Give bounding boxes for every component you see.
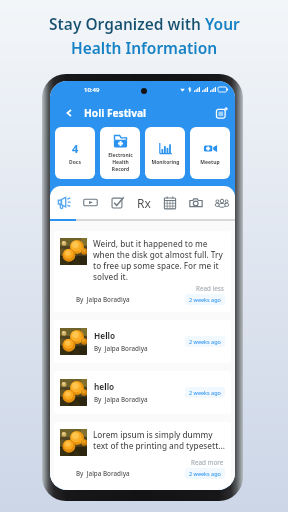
button[interactable]: Meetup — [190, 127, 230, 179]
staticText: Lorem ipsum is simply dummy text of the … — [93, 429, 225, 451]
staticText: Your — [205, 13, 240, 34]
button[interactable]: hello — [54, 371, 231, 414]
staticText: Meetup — [200, 159, 220, 166]
button[interactable]: 2 weeks ago — [185, 468, 225, 479]
button[interactable]: Add note — [214, 105, 230, 121]
button[interactable]: Electronic Health Record — [100, 127, 140, 179]
other: Back — [65, 109, 73, 117]
button[interactable]: Weird, but it happened to me when the di… — [54, 231, 231, 312]
staticText: 4 — [72, 141, 79, 156]
staticText: By Jalpa Boradiya — [94, 395, 148, 404]
staticText: Rx — [137, 195, 151, 211]
staticText: By Jalpa Boradiya — [94, 344, 148, 353]
button[interactable]: Read more — [191, 456, 225, 467]
button[interactable]: Prescriptions — [131, 186, 157, 219]
button[interactable]: Members — [209, 186, 235, 219]
staticText: Stay Organized with — [49, 13, 205, 34]
staticText: Holi Festival — [84, 106, 147, 120]
staticText: Docs — [69, 159, 81, 166]
staticText: 2 weeks ago — [189, 470, 221, 477]
staticText: Monitoring — [151, 159, 180, 166]
button[interactable]: Calendar — [157, 186, 183, 219]
button[interactable]: Announcements — [50, 186, 77, 219]
button[interactable]: Photos — [183, 186, 209, 219]
staticText: Weird, but it happened to me when the di… — [93, 238, 225, 282]
staticText: hello — [94, 381, 115, 392]
button[interactable]: 2 weeks ago — [185, 336, 225, 347]
staticText: Electronic Health Record — [108, 152, 133, 173]
staticText: By Jalpa Boradiya — [76, 469, 130, 478]
button[interactable]: Hello — [54, 320, 231, 363]
staticText: By Jalpa Boradiya — [76, 295, 130, 304]
staticText: 2 weeks ago — [189, 338, 221, 345]
button[interactable]: Tasks — [104, 186, 131, 219]
staticText: Hello — [94, 330, 116, 341]
button[interactable]: Monitoring — [145, 127, 185, 179]
staticText: 2 weeks ago — [189, 296, 221, 303]
button[interactable]: Lorem ipsum is simply dummy text of the … — [54, 422, 231, 486]
button[interactable]: Back — [59, 103, 153, 123]
button[interactable]: 2 weeks ago — [185, 387, 225, 398]
staticText: 10:49 — [84, 86, 100, 94]
button[interactable]: 4 — [55, 127, 95, 179]
button[interactable]: Videos — [77, 186, 104, 219]
button[interactable]: 2 weeks ago — [185, 294, 225, 305]
button[interactable]: Read less — [196, 282, 225, 293]
staticText: Health Information — [71, 37, 218, 58]
staticText: 2 weeks ago — [189, 389, 221, 396]
